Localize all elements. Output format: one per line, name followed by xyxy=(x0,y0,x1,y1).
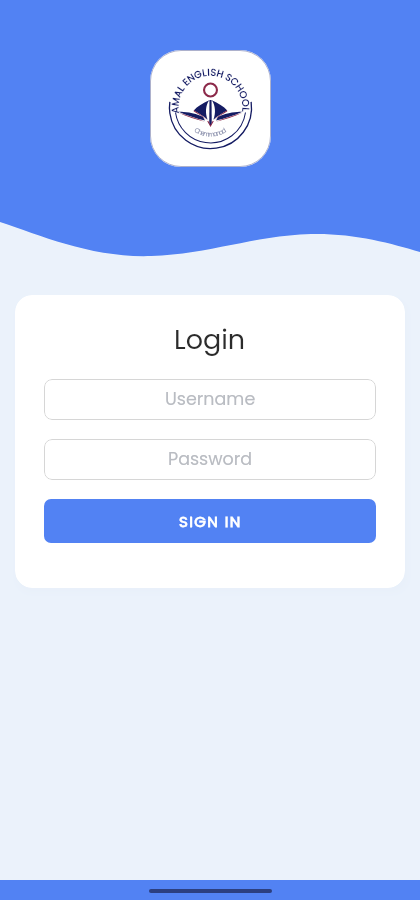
button[interactable]: Username xyxy=(44,379,376,420)
staticText: SIGN IN xyxy=(179,511,242,532)
button[interactable]: Password xyxy=(44,439,376,480)
staticText: Username xyxy=(165,387,256,412)
button[interactable]: SIGN IN xyxy=(44,499,376,543)
staticText: Login xyxy=(174,321,246,359)
staticText: Password xyxy=(168,447,253,472)
button[interactable]: Amal English School logo xyxy=(150,50,271,167)
